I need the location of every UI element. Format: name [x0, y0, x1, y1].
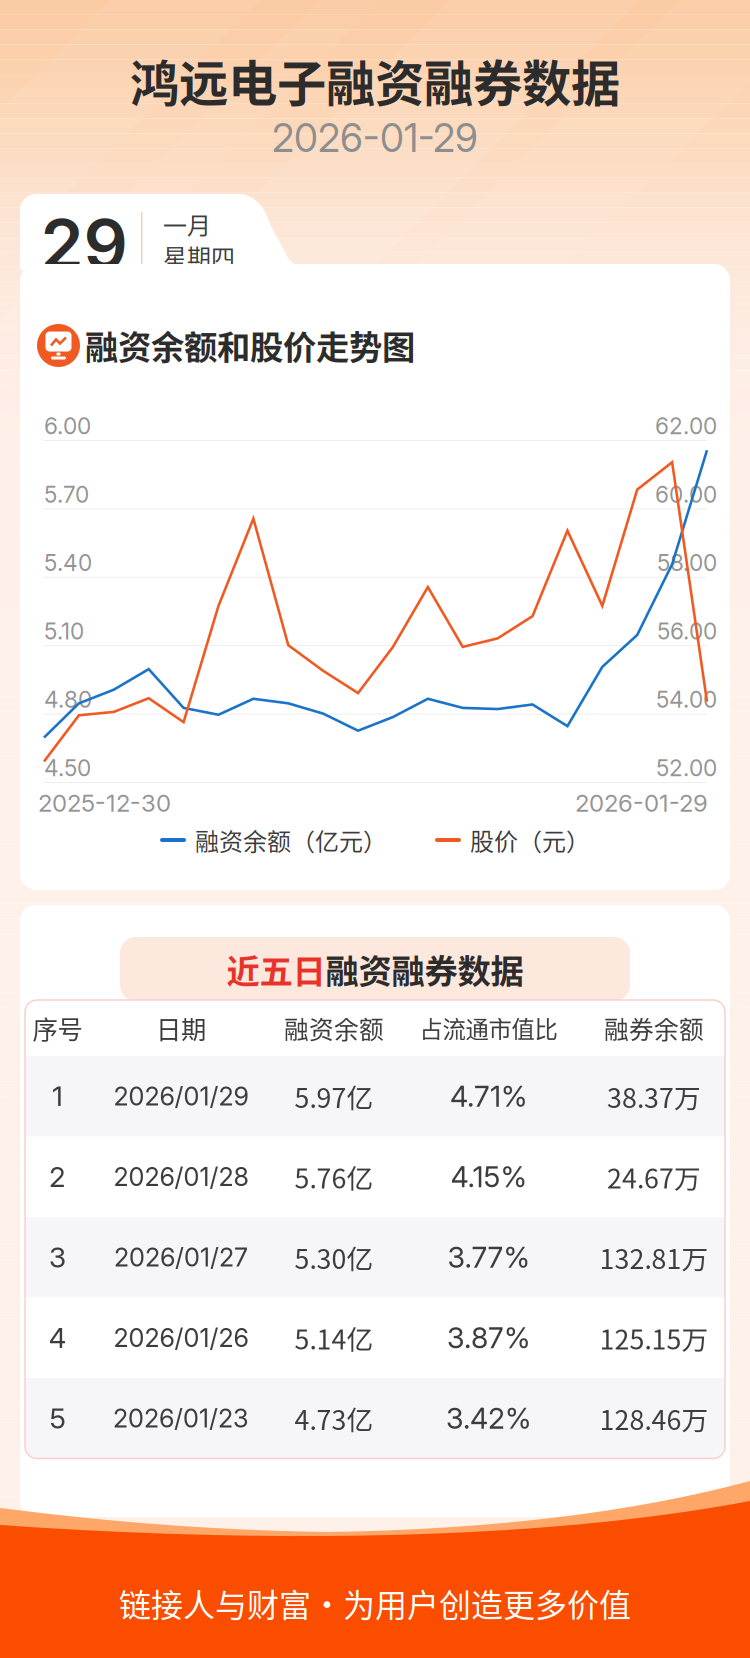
staticText: 62.00 [655, 412, 717, 440]
staticText: 5 [49, 1401, 65, 1435]
staticText: 融券余额 [604, 1010, 704, 1046]
staticText: 2026-01-29 [272, 115, 478, 161]
staticText: 3 [49, 1240, 66, 1274]
staticText: 58.00 [657, 549, 717, 576]
staticText: 5.97亿 [294, 1077, 373, 1115]
staticText: 4.80 [44, 686, 92, 713]
staticText: 3.77% [447, 1240, 529, 1275]
staticText: 融资余额（亿元） [195, 823, 387, 857]
staticText: 2026/01/27 [114, 1242, 248, 1273]
staticText: 2026-01-29 [575, 788, 708, 817]
staticText: 4.71% [450, 1079, 527, 1114]
staticText: 一月 [163, 207, 211, 241]
staticText: 128.46万 [599, 1399, 708, 1437]
staticText: 29 [40, 202, 127, 286]
staticText: 125.15万 [599, 1318, 708, 1357]
staticText: 序号 [32, 1010, 82, 1046]
staticText: 24.67万 [607, 1157, 701, 1196]
staticText: 日期 [156, 1010, 206, 1046]
staticText: 5.14亿 [294, 1318, 373, 1357]
staticText: 6.00 [44, 412, 91, 440]
staticText: 60.00 [655, 481, 717, 508]
staticText: 2026/01/29 [113, 1081, 248, 1112]
staticText: 2026/01/28 [113, 1161, 248, 1192]
staticText: 2 [49, 1160, 66, 1194]
staticText: 3.42% [446, 1401, 531, 1436]
staticText: 5.30亿 [294, 1238, 373, 1276]
staticText: 1 [52, 1079, 63, 1113]
staticText: 融资余额和股价走势图 [85, 321, 415, 369]
staticText: 4.15% [450, 1159, 526, 1194]
staticText: 54.00 [656, 686, 717, 713]
staticText: 4.73亿 [294, 1399, 373, 1437]
staticText: 4 [48, 1321, 66, 1355]
staticText: 股价（元） [470, 823, 590, 857]
staticText: 5.40 [44, 549, 92, 576]
staticText: 2026/01/26 [113, 1322, 248, 1353]
staticText: 融资融券数据 [325, 945, 523, 993]
staticText: 4.50 [44, 754, 91, 782]
staticText: 5.10 [44, 617, 84, 645]
staticText: 融资余额 [284, 1010, 384, 1046]
staticText: 近五日 [226, 945, 325, 993]
staticText: 2026/01/23 [113, 1403, 249, 1434]
staticText: 132.81万 [599, 1238, 708, 1276]
staticText: 52.00 [656, 754, 717, 782]
staticText: 38.37万 [607, 1077, 701, 1115]
staticText: 链接人与财富·为用户创造更多价值 [119, 1580, 631, 1626]
staticText: 5.76亿 [294, 1157, 373, 1196]
staticText: 56.00 [657, 617, 717, 645]
staticText: 鸿远电子融资融券数据 [130, 44, 620, 116]
staticText: 2025-12-30 [38, 788, 171, 817]
staticText: 5.70 [44, 481, 89, 508]
staticText: 星期四 [163, 239, 235, 273]
staticText: 3.87% [447, 1320, 530, 1355]
staticText: 占流通市值比 [419, 1011, 557, 1045]
